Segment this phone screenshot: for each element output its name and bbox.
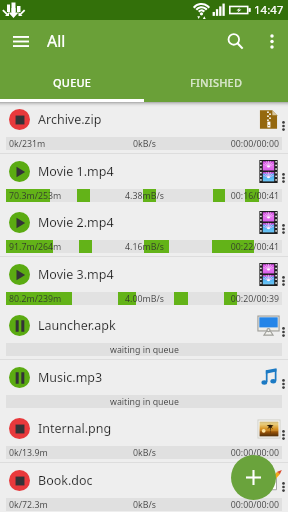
button[interactable]: Item menu: [277, 118, 288, 134]
staticText: 0kB/s: [133, 447, 156, 459]
button[interactable]: PLAY: [0, 205, 288, 257]
button[interactable]: STOP: [9, 470, 30, 491]
button[interactable]: Item menu: [277, 376, 288, 392]
staticText: Internal.png: [38, 420, 112, 437]
button[interactable]: PAUSE: [9, 367, 30, 388]
staticText: 4.16mB/s: [125, 241, 164, 253]
staticText: Movie 3.mp4: [38, 266, 114, 283]
button[interactable]: Navigation menu: [3, 23, 39, 59]
button[interactable]: PLAY: [0, 154, 288, 205]
staticText: 0kB/s: [133, 499, 156, 511]
button[interactable]: Item menu: [277, 170, 288, 186]
button[interactable]: PAUSE: [0, 360, 288, 411]
button[interactable]: STOP: [0, 102, 288, 154]
staticText: All: [47, 30, 66, 52]
staticText: 0k/72.3m: [9, 499, 48, 511]
staticText: Launcher.apk: [38, 317, 116, 334]
staticText: 00:00/00:00: [230, 447, 279, 459]
staticText: 0k/231m: [9, 138, 46, 150]
staticText: 70.3m/253m: [9, 190, 62, 202]
staticText: 4.38mB/s: [125, 190, 164, 202]
staticText: 00:20/00:39: [230, 293, 279, 305]
staticText: 4.00mB/s: [125, 293, 164, 305]
button[interactable]: Item menu: [277, 273, 288, 289]
button[interactable]: PAUSE: [0, 308, 288, 360]
staticText: 0k/13.9m: [9, 447, 48, 459]
staticText: waiting in queue: [110, 396, 179, 408]
button[interactable]: STOP: [9, 109, 30, 130]
staticText: 14:47: [254, 2, 284, 18]
button[interactable]: Search: [215, 21, 255, 61]
staticText: 0kB/s: [133, 138, 156, 150]
staticText: QUEUE: [53, 75, 92, 90]
staticText: 00:00/00:00: [230, 138, 279, 150]
staticText: 80.2m/239m: [9, 293, 62, 305]
staticText: waiting in queue: [110, 344, 179, 356]
button[interactable]: PLAY: [9, 161, 30, 182]
staticText: Music.mp3: [38, 369, 103, 386]
button[interactable]: STOP: [0, 463, 288, 512]
button[interactable]: Item menu: [277, 479, 288, 495]
staticText: Archive.zip: [38, 111, 102, 128]
button[interactable]: FINISHED: [144, 62, 288, 102]
staticText: 00:00/00:00: [230, 499, 279, 511]
button[interactable]: PLAY: [0, 257, 288, 308]
button[interactable]: Item menu: [277, 221, 288, 237]
button[interactable]: PLAY: [9, 212, 30, 233]
staticText: Movie 2.mp4: [38, 214, 114, 231]
button[interactable]: Item menu: [277, 324, 288, 340]
staticText: Book.doc: [38, 472, 93, 489]
button[interactable]: STOP: [0, 411, 288, 463]
staticText: Movie 1.mp4: [38, 163, 114, 180]
button[interactable]: STOP: [9, 418, 30, 439]
button[interactable]: Item menu: [277, 427, 288, 443]
staticText: FINISHED: [190, 75, 243, 90]
button[interactable]: More options: [255, 25, 288, 58]
staticText: 00:16/00:41: [230, 190, 279, 202]
button[interactable]: PAUSE: [9, 315, 30, 336]
button[interactable]: Add download: [231, 455, 276, 500]
button[interactable]: PLAY: [9, 264, 30, 285]
staticText: 91.7m/264m: [9, 241, 62, 253]
staticText: 00:22/00:41: [230, 241, 279, 253]
button[interactable]: QUEUE: [0, 62, 144, 102]
